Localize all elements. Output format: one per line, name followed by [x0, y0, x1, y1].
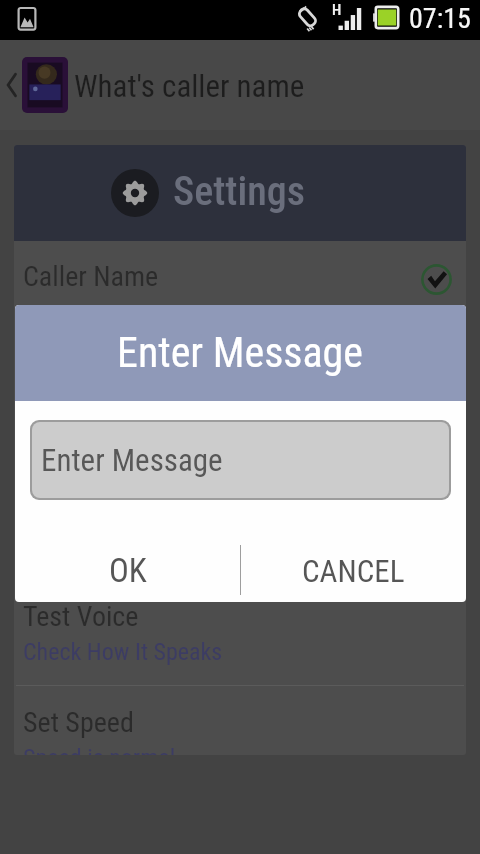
staticText: Caller Name [23, 260, 159, 293]
staticText: Check How It Speaks [23, 638, 223, 666]
button[interactable]: OK [15, 528, 240, 602]
staticText: Type your message [23, 403, 206, 431]
staticText: Enter Message [117, 328, 364, 377]
button[interactable]: Set Speed [14, 687, 466, 755]
button[interactable]: Caller Name [14, 241, 466, 345]
button[interactable]: Message [14, 346, 466, 450]
staticText: H [332, 1, 342, 19]
button[interactable]: Navigate up [0, 51, 72, 119]
staticText: CANCEL [302, 553, 405, 589]
button[interactable]: CANCEL [241, 528, 466, 602]
other: Navigate up [3, 70, 19, 100]
button[interactable]: Enter Message [32, 422, 449, 498]
staticText: Volume [23, 470, 107, 503]
other: Vibrate mode [294, 4, 322, 32]
button[interactable]: Test Voice [14, 581, 466, 685]
staticText: What's caller name [74, 68, 305, 104]
button[interactable]: Volume [14, 451, 466, 555]
staticText: Message [23, 365, 124, 398]
staticText: Enter Message [41, 442, 223, 478]
staticText: Test Voice [23, 600, 139, 633]
staticText: Settings [173, 168, 305, 215]
staticText: OK [109, 551, 147, 590]
staticText: Set Speed [23, 706, 134, 739]
staticText: 07:15 [409, 2, 471, 35]
staticText: Speed is normal [23, 744, 176, 755]
